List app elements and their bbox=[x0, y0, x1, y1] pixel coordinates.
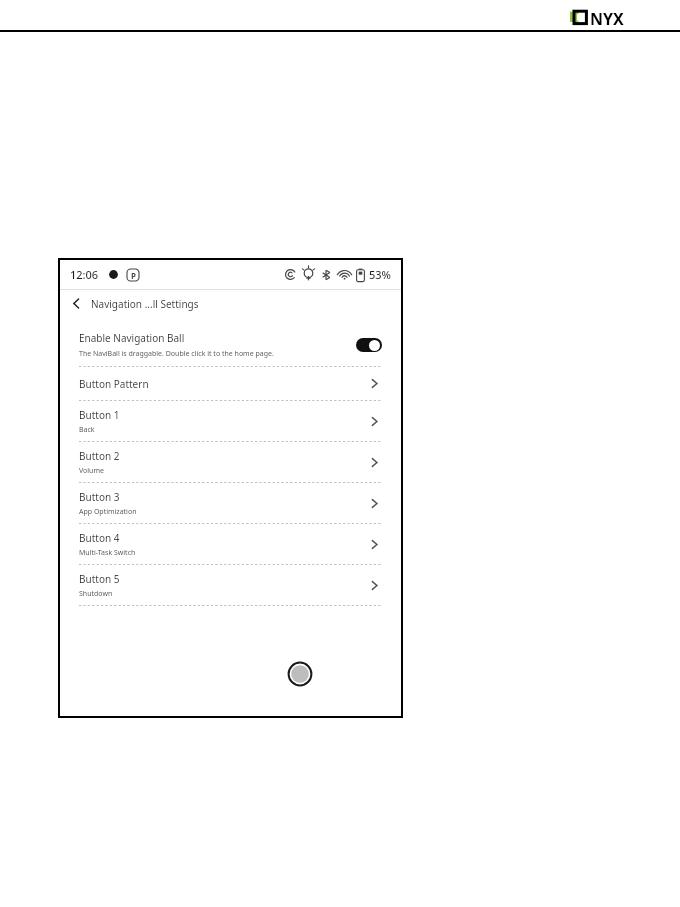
staticText: Button 5 bbox=[79, 572, 120, 586]
staticText: Shutdown bbox=[79, 589, 113, 599]
staticText: App Optimization bbox=[79, 507, 137, 517]
other: ONYX logo bbox=[570, 8, 656, 28]
button[interactable]: Navigation ...ll Settings bbox=[60, 290, 401, 317]
button[interactable]: Button 1 bbox=[79, 401, 382, 441]
staticText: The NaviBall is draggable. Double click … bbox=[79, 349, 274, 359]
staticText: Back bbox=[79, 425, 95, 435]
staticText: Navigation ...ll Settings bbox=[91, 297, 199, 311]
button[interactable]: Button 2 bbox=[79, 442, 382, 482]
staticText: Multi-Task Switch bbox=[79, 548, 136, 558]
staticText: Button 3 bbox=[79, 490, 120, 504]
button[interactable]: Button 3 bbox=[79, 483, 382, 523]
button[interactable]: Navigation Ball bbox=[288, 662, 312, 686]
staticText: Volume bbox=[79, 466, 104, 476]
staticText: Enable Navigation Ball bbox=[79, 331, 185, 345]
button[interactable]: Button 5 bbox=[79, 565, 382, 605]
button[interactable]: Enable Navigation Ball bbox=[79, 323, 382, 366]
staticText: P bbox=[131, 270, 136, 281]
staticText: Button Pattern bbox=[79, 377, 149, 391]
staticText: 12:06 bbox=[70, 267, 99, 282]
staticText: Button 1 bbox=[79, 408, 120, 422]
button[interactable]: Button 4 bbox=[79, 524, 382, 564]
staticText: NYX bbox=[590, 8, 624, 28]
button[interactable]: Enable Navigation Ball toggle bbox=[356, 338, 382, 352]
staticText: 53% bbox=[369, 267, 391, 282]
staticText: Button 2 bbox=[79, 449, 120, 463]
staticText: Button 4 bbox=[79, 531, 120, 545]
button[interactable]: Button Pattern bbox=[79, 367, 382, 400]
